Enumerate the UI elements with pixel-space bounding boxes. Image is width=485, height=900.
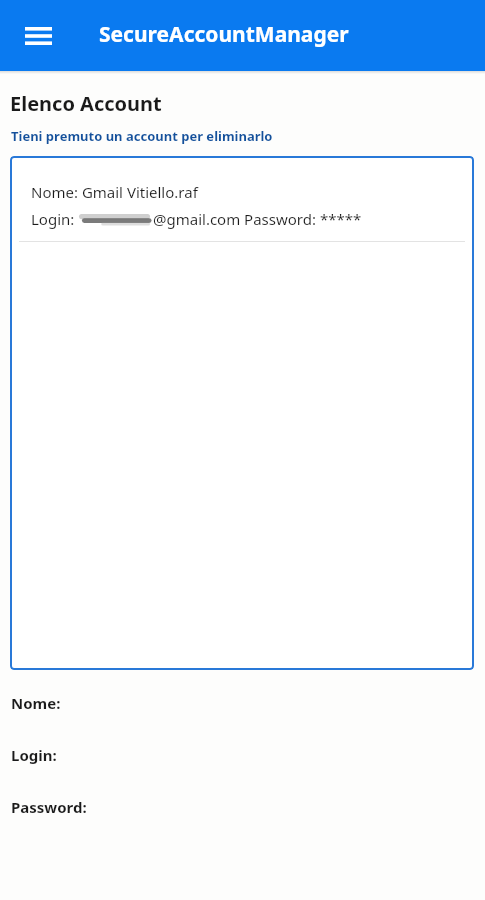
button[interactable]: Nome: Gmail Vitiello.raf — [10, 156, 474, 241]
staticText: Password: — [11, 797, 87, 817]
staticText: Nome: — [11, 693, 61, 713]
staticText: SecureAccountManager — [99, 20, 349, 49]
staticText: @gmail.com Password: ***** — [153, 209, 362, 229]
staticText: Tieni premuto un account per eliminarlo — [11, 127, 273, 145]
staticText: Nome: Gmail Vitiello.raf — [31, 182, 198, 202]
staticText: Login: — [31, 209, 75, 229]
button[interactable]: Open navigation menu — [11, 8, 66, 63]
staticText: Elenco Account — [10, 90, 162, 117]
staticText: Login: — [11, 745, 57, 765]
